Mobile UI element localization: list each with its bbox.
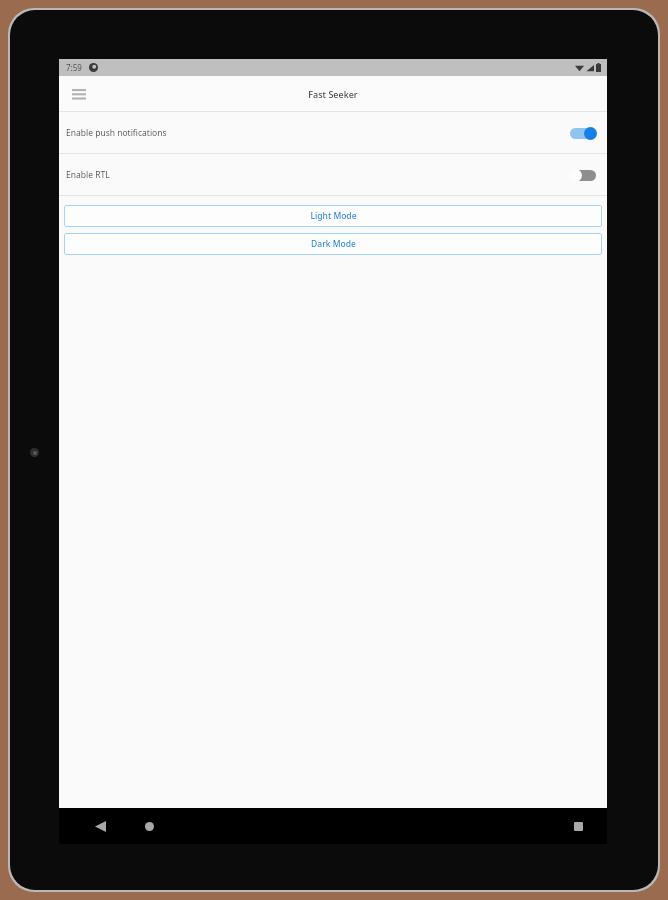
button[interactable]: Dark Mode: [64, 233, 602, 255]
staticText: Enable push notifications: [66, 127, 167, 139]
button[interactable]: Enable push notifications: [566, 123, 600, 143]
staticText: Fast Seeker: [308, 88, 358, 100]
button[interactable]: Light Mode: [64, 205, 602, 227]
button[interactable]: Enable RTL: [59, 154, 607, 196]
staticText: Light Mode: [310, 210, 357, 222]
button[interactable]: Open navigation menu: [66, 81, 92, 107]
button[interactable]: Recent apps: [555, 808, 601, 844]
button[interactable]: Enable push notifications: [59, 112, 607, 154]
staticText: 7:59: [66, 62, 82, 73]
button[interactable]: Home: [126, 808, 172, 844]
button[interactable]: Enable RTL: [566, 165, 600, 185]
button[interactable]: Back: [77, 808, 123, 844]
staticText: Enable RTL: [66, 169, 110, 181]
staticText: Dark Mode: [311, 238, 356, 250]
